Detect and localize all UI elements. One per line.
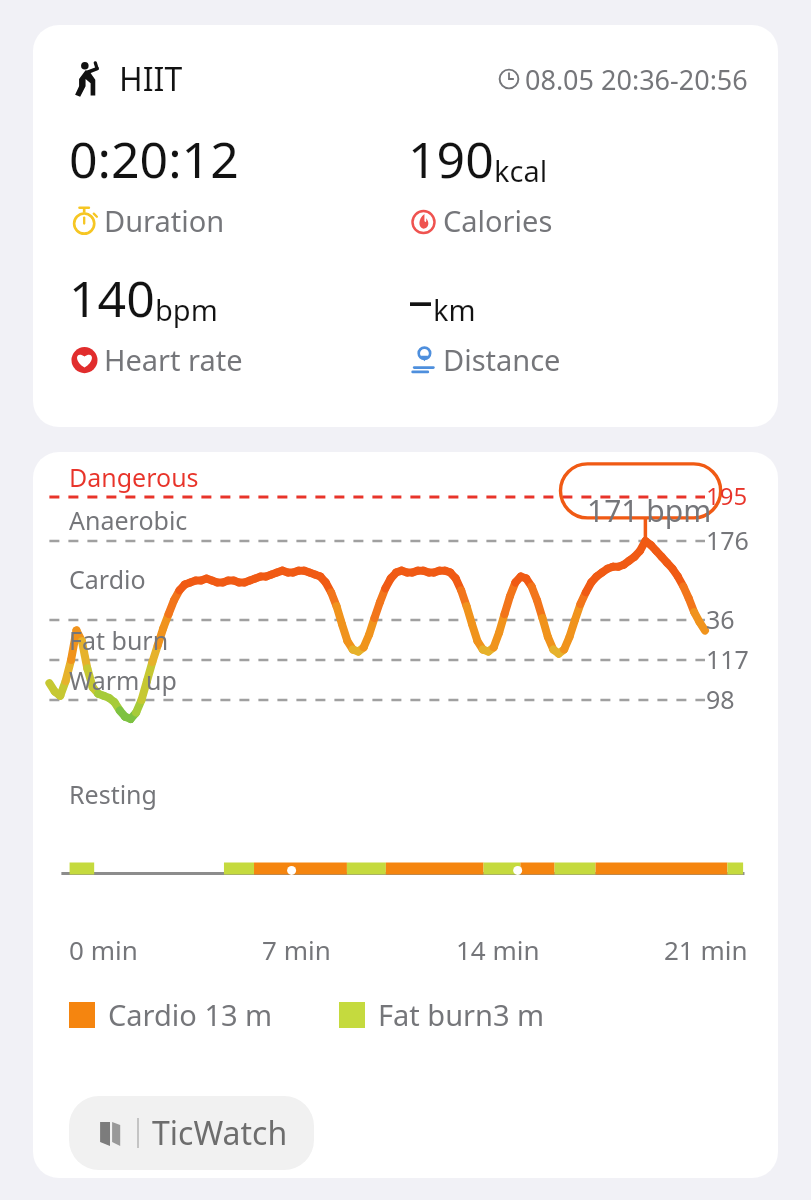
button[interactable]: 0:20:12 xyxy=(69,125,408,240)
staticText: 14 min xyxy=(456,932,540,967)
staticText: Fat burn xyxy=(69,623,169,657)
staticText: 117 xyxy=(706,642,749,676)
staticText: Cardio 13 m xyxy=(108,995,273,1034)
button[interactable]: HIIT workout xyxy=(33,25,778,427)
staticText: HIIT xyxy=(119,57,183,101)
staticText: 21 min xyxy=(664,932,748,967)
button[interactable]: Cardio 13 m xyxy=(69,995,273,1034)
staticText: 08.05 20:36-20:56 xyxy=(525,61,748,98)
other: HIIT workout xyxy=(69,61,105,97)
staticText: Cardio xyxy=(69,562,146,596)
staticText: Fat burn3 m xyxy=(378,995,545,1034)
button[interactable]: Dangerous xyxy=(33,452,778,1178)
button[interactable]: 190 xyxy=(408,125,748,240)
staticText: 171 bpm xyxy=(587,490,712,531)
staticText: 0 min xyxy=(69,932,138,967)
staticText: Warm up xyxy=(69,663,177,697)
staticText: 176 xyxy=(706,523,749,557)
staticText: Dangerous xyxy=(69,460,199,494)
button[interactable]: 140 xyxy=(69,264,408,379)
staticText: 195 xyxy=(706,479,748,512)
staticText: Distance xyxy=(443,340,561,379)
staticText: 36 xyxy=(706,602,735,636)
staticText: 0:20:12 xyxy=(69,125,239,193)
staticText: – xyxy=(408,264,433,332)
staticText: 140 xyxy=(69,264,155,332)
staticText: Heart rate xyxy=(104,340,243,379)
staticText: bpm xyxy=(155,290,218,329)
staticText: TicWatch xyxy=(152,1111,288,1155)
staticText: Anaerobic xyxy=(69,503,188,537)
button[interactable]: – xyxy=(408,264,748,379)
staticText: 190 xyxy=(408,125,494,193)
button[interactable]: Fat burn3 m xyxy=(339,995,545,1034)
button[interactable]: TicWatch xyxy=(69,1096,314,1170)
staticText: Calories xyxy=(443,201,553,240)
staticText: 7 min xyxy=(262,932,331,967)
staticText: Duration xyxy=(104,201,225,240)
staticText: 98 xyxy=(706,682,735,716)
staticText: km xyxy=(433,290,476,329)
staticText: Resting xyxy=(69,777,157,811)
staticText: kcal xyxy=(494,151,548,190)
